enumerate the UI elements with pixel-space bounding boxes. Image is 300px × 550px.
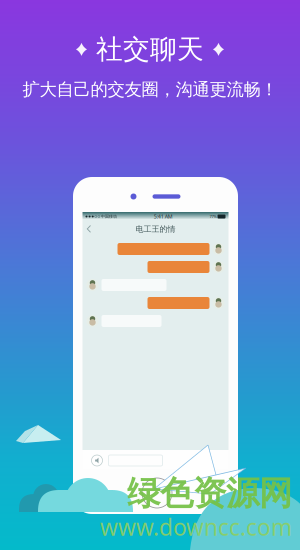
staticText: 绿色资源网 [127,473,292,514]
staticText: 电工王的情 [135,224,175,234]
staticText: 中国移动 [101,214,117,219]
staticText: 77% [209,214,216,219]
staticText: 5:41 AM [154,213,173,220]
staticText: www.downcc.com [100,512,292,542]
staticText: 扩大自己的交友圈，沟通更流畅！ [22,79,277,100]
staticText: 社交聊天 [96,33,204,66]
button[interactable]: Voice message [91,455,102,466]
button[interactable]: Back [82,221,95,236]
